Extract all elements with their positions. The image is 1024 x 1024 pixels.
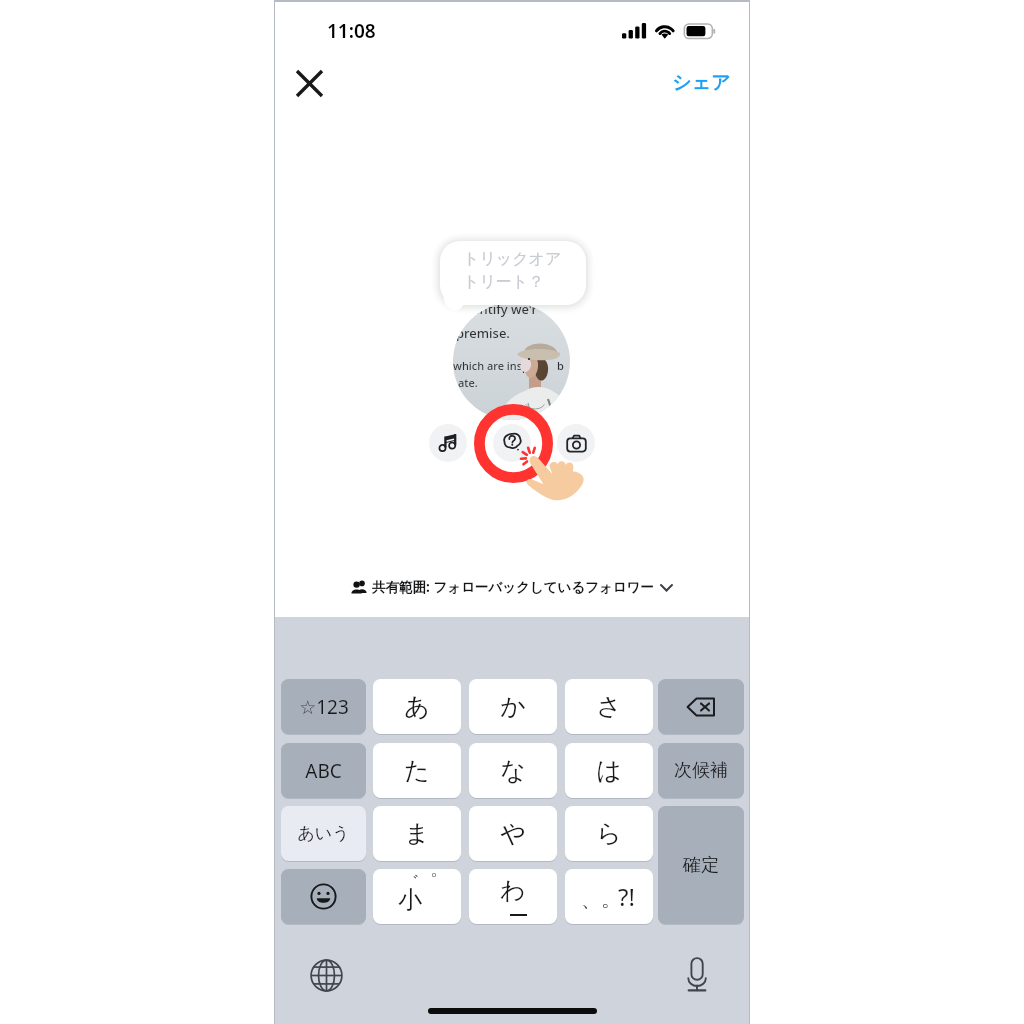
- staticText: ゜: [418, 871, 438, 895]
- staticText: わ: [500, 875, 526, 906]
- staticText: トリート？: [463, 272, 545, 292]
- staticText: さ: [596, 691, 622, 722]
- button[interactable]: Dictation: [675, 951, 719, 995]
- staticText: dentify we'r: [464, 303, 570, 318]
- button[interactable]: Switch keyboard: [304, 953, 348, 997]
- staticText: ate.: [458, 375, 570, 390]
- button[interactable]: 次候補: [658, 743, 744, 798]
- staticText: b: [557, 358, 570, 373]
- staticText: あいう: [297, 823, 350, 844]
- button[interactable]: 、。?!: [565, 869, 653, 924]
- staticText: ま: [404, 818, 430, 849]
- staticText: 次候補: [674, 759, 728, 782]
- staticText: シェア: [672, 71, 731, 95]
- button[interactable]: 小 dakuten handakuten: [373, 869, 461, 924]
- button[interactable]: Add question: [493, 424, 531, 462]
- button[interactable]: ら: [565, 806, 653, 861]
- staticText: ☆123: [299, 694, 349, 720]
- button[interactable]: Add music: [429, 424, 467, 462]
- staticText: や: [500, 818, 526, 849]
- button[interactable]: Backspace: [658, 679, 744, 734]
- button[interactable]: Emoji keyboard: [281, 869, 366, 924]
- button[interactable]: あいう: [281, 806, 366, 861]
- button[interactable]: あ: [373, 679, 461, 734]
- staticText: ABC: [305, 758, 342, 784]
- button[interactable]: か: [469, 679, 557, 734]
- staticText: 確定: [683, 854, 719, 877]
- staticText: か: [500, 691, 526, 722]
- staticText: 小: [398, 885, 422, 915]
- button[interactable]: た: [373, 743, 461, 798]
- staticText: な: [500, 755, 526, 786]
- button[interactable]: Close: [286, 60, 333, 107]
- staticText: ゛: [400, 871, 420, 895]
- staticText: ら: [596, 818, 622, 849]
- button[interactable]: さ: [565, 679, 653, 734]
- staticText: トリックオア: [463, 249, 562, 269]
- staticText: 11:08: [327, 18, 376, 44]
- staticText: premise.: [456, 324, 570, 342]
- staticText: あ: [404, 691, 430, 722]
- button[interactable]: Profile photo: [453, 303, 570, 420]
- button[interactable]: や: [469, 806, 557, 861]
- staticText: ?!: [618, 880, 635, 913]
- button[interactable]: ま: [373, 806, 461, 861]
- button[interactable]: わ: [469, 869, 557, 924]
- button[interactable]: Add photo: [557, 424, 595, 462]
- button[interactable]: 確定: [658, 806, 744, 924]
- button[interactable]: ABC: [281, 743, 366, 798]
- staticText: は: [596, 755, 622, 786]
- button[interactable]: 共有範囲: フォローバックしているフォロワー: [275, 573, 749, 601]
- staticText: 共有範囲: フォローバックしているフォロワー: [372, 578, 654, 596]
- staticText: which are inspi: [453, 358, 570, 373]
- staticText: 、。: [581, 887, 621, 912]
- button[interactable]: シェア: [664, 60, 738, 106]
- staticText: た: [404, 755, 430, 786]
- button[interactable]: は: [565, 743, 653, 798]
- button[interactable]: な: [469, 743, 557, 798]
- button[interactable]: ☆123: [281, 679, 366, 734]
